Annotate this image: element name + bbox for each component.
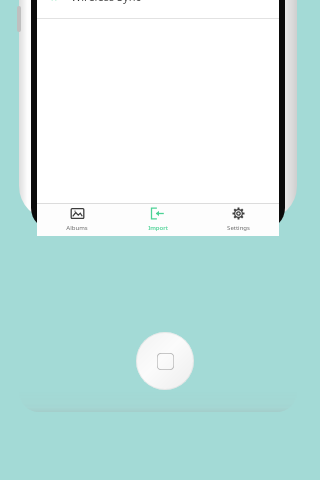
staticText: Import <box>148 224 168 232</box>
button[interactable]: Home <box>136 332 194 390</box>
staticText: Albums <box>66 224 88 232</box>
button[interactable]: Wireless Sync <box>37 0 279 19</box>
button[interactable]: Settings <box>198 203 279 236</box>
staticText: Settings <box>227 224 250 232</box>
button[interactable]: Albums <box>37 203 117 236</box>
button[interactable]: Import <box>117 203 198 236</box>
staticText: Wireless Sync <box>71 0 141 4</box>
